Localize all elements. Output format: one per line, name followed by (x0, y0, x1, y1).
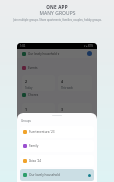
staticText: 4 (61, 79, 64, 84)
button[interactable]: Our lovely household (20, 169, 94, 181)
staticText: 1 (25, 107, 28, 112)
staticText: 1:02 (20, 44, 26, 48)
staticText: Join multiple groups. Share apartments, … (13, 18, 102, 22)
staticText: Ibiza '24 (29, 159, 41, 163)
button[interactable]: Family (20, 140, 94, 152)
button[interactable]: 1 (22, 103, 55, 119)
staticText: This week (61, 86, 73, 90)
staticText: ONE APP (46, 4, 68, 10)
button[interactable]: Our lovely household ▾ (17, 49, 97, 58)
staticText: Our lovely household ▾ (28, 52, 60, 56)
staticText: Our lovely household (29, 173, 60, 177)
staticText: Chores (28, 93, 39, 97)
staticText: ▾ ▴ 87% (84, 44, 94, 48)
button[interactable]: Fuerteventura '23 (20, 126, 94, 138)
staticText: 2 (25, 79, 28, 84)
button[interactable]: 3 (58, 103, 92, 119)
staticText: MANY GROUPS (39, 10, 76, 17)
staticText: Fuerteventura '23 (29, 130, 55, 134)
button[interactable]: 4 (58, 75, 92, 91)
staticText: Done (61, 114, 68, 118)
staticText: Today (25, 86, 33, 90)
staticText: 3 (61, 107, 64, 112)
button[interactable]: Ibiza '24 (20, 155, 94, 167)
staticText: Family (29, 144, 39, 148)
staticText: Events (28, 66, 38, 70)
button[interactable]: 2 (22, 75, 55, 91)
staticText: Groups (21, 119, 31, 123)
